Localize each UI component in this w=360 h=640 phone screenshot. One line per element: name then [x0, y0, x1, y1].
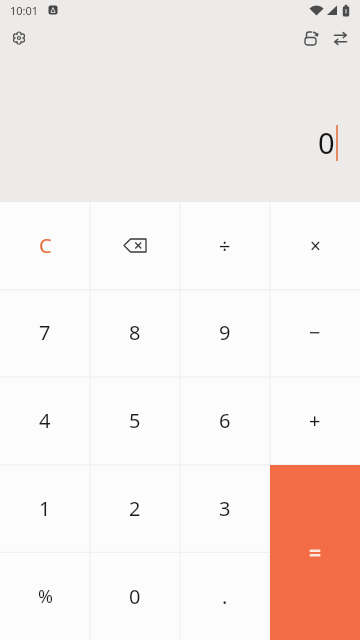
- staticText: %: [38, 584, 53, 609]
- button[interactable]: +: [270, 376, 360, 464]
- button[interactable]: 0: [90, 552, 180, 640]
- button[interactable]: 7: [0, 289, 90, 376]
- button[interactable]: 5: [90, 376, 180, 464]
- button[interactable]: 9: [180, 289, 270, 376]
- staticText: 6: [219, 407, 231, 434]
- button[interactable]: 8: [90, 289, 180, 376]
- button[interactable]: C: [0, 202, 90, 289]
- staticText: 1: [39, 495, 51, 522]
- button[interactable]: 1: [0, 464, 90, 552]
- staticText: +: [309, 407, 321, 434]
- staticText: 4: [39, 407, 51, 434]
- button[interactable]: [7, 26, 31, 50]
- staticText: C: [39, 232, 52, 259]
- staticText: −: [309, 319, 321, 346]
- button[interactable]: ×: [270, 202, 360, 289]
- staticText: 0: [129, 583, 141, 610]
- button[interactable]: .: [180, 552, 270, 640]
- button[interactable]: 3: [180, 464, 270, 552]
- staticText: .: [222, 583, 228, 610]
- staticText: 8: [129, 319, 141, 346]
- button[interactable]: [328, 26, 352, 50]
- button[interactable]: [270, 465, 360, 640]
- staticText: ×: [310, 233, 321, 259]
- button[interactable]: [90, 202, 180, 289]
- button[interactable]: 4: [0, 376, 90, 464]
- staticText: 9: [219, 319, 231, 346]
- staticText: 7: [39, 319, 51, 346]
- button[interactable]: −: [270, 289, 360, 376]
- staticText: 0: [318, 123, 335, 162]
- button[interactable]: %: [0, 552, 90, 640]
- button[interactable]: ÷: [180, 202, 270, 289]
- staticText: 2: [129, 495, 141, 522]
- button[interactable]: 6: [180, 376, 270, 464]
- staticText: ÷: [219, 232, 231, 259]
- staticText: 3: [219, 495, 231, 522]
- staticText: 5: [129, 407, 141, 434]
- staticText: 10:01: [10, 3, 39, 18]
- button[interactable]: 2: [90, 464, 180, 552]
- button[interactable]: [299, 26, 323, 50]
